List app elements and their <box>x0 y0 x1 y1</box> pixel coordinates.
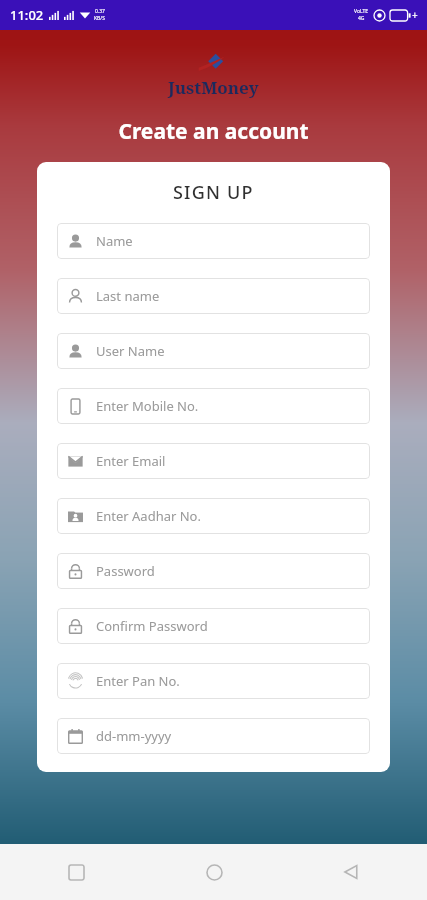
staticText: dd-mm-yyyy <box>96 727 172 745</box>
staticText: + <box>412 8 418 22</box>
button[interactable]: Enter Aadhar No. <box>57 498 370 534</box>
button[interactable]: Enter Pan No. <box>57 663 370 699</box>
button[interactable]: Password <box>57 553 370 589</box>
button[interactable]: Name <box>57 223 370 259</box>
staticText: 0.37 <box>95 8 105 15</box>
staticText: Enter Mobile No. <box>96 397 199 415</box>
staticText: Enter Pan No. <box>96 672 180 690</box>
button[interactable]: Confirm Password <box>57 608 370 644</box>
staticText: 11:02 <box>10 6 44 24</box>
staticText: Enter Email <box>96 452 166 470</box>
staticText: Name <box>96 232 133 250</box>
staticText: KB/S <box>94 15 105 22</box>
staticText: Confirm Password <box>96 617 208 635</box>
staticText: VoLTE <box>354 8 369 15</box>
staticText: SIGN UP <box>173 180 254 205</box>
button[interactable]: Enter Email <box>57 443 370 479</box>
button[interactable]: dd-mm-yyyy <box>57 718 370 754</box>
button[interactable]: Enter Mobile No. <box>57 388 370 424</box>
staticText: Enter Aadhar No. <box>96 507 201 525</box>
staticText: JustMoney <box>168 76 259 99</box>
button[interactable]: User Name <box>57 333 370 369</box>
staticText: Create an account <box>0 117 427 146</box>
staticText: Password <box>96 562 155 580</box>
button[interactable]: Recents <box>56 852 96 892</box>
staticText: 4G <box>358 15 365 22</box>
staticText: User Name <box>96 342 165 360</box>
staticText: Last name <box>96 287 160 305</box>
button[interactable]: Back <box>331 852 371 892</box>
button[interactable]: Home <box>194 852 234 892</box>
button[interactable]: Last name <box>57 278 370 314</box>
